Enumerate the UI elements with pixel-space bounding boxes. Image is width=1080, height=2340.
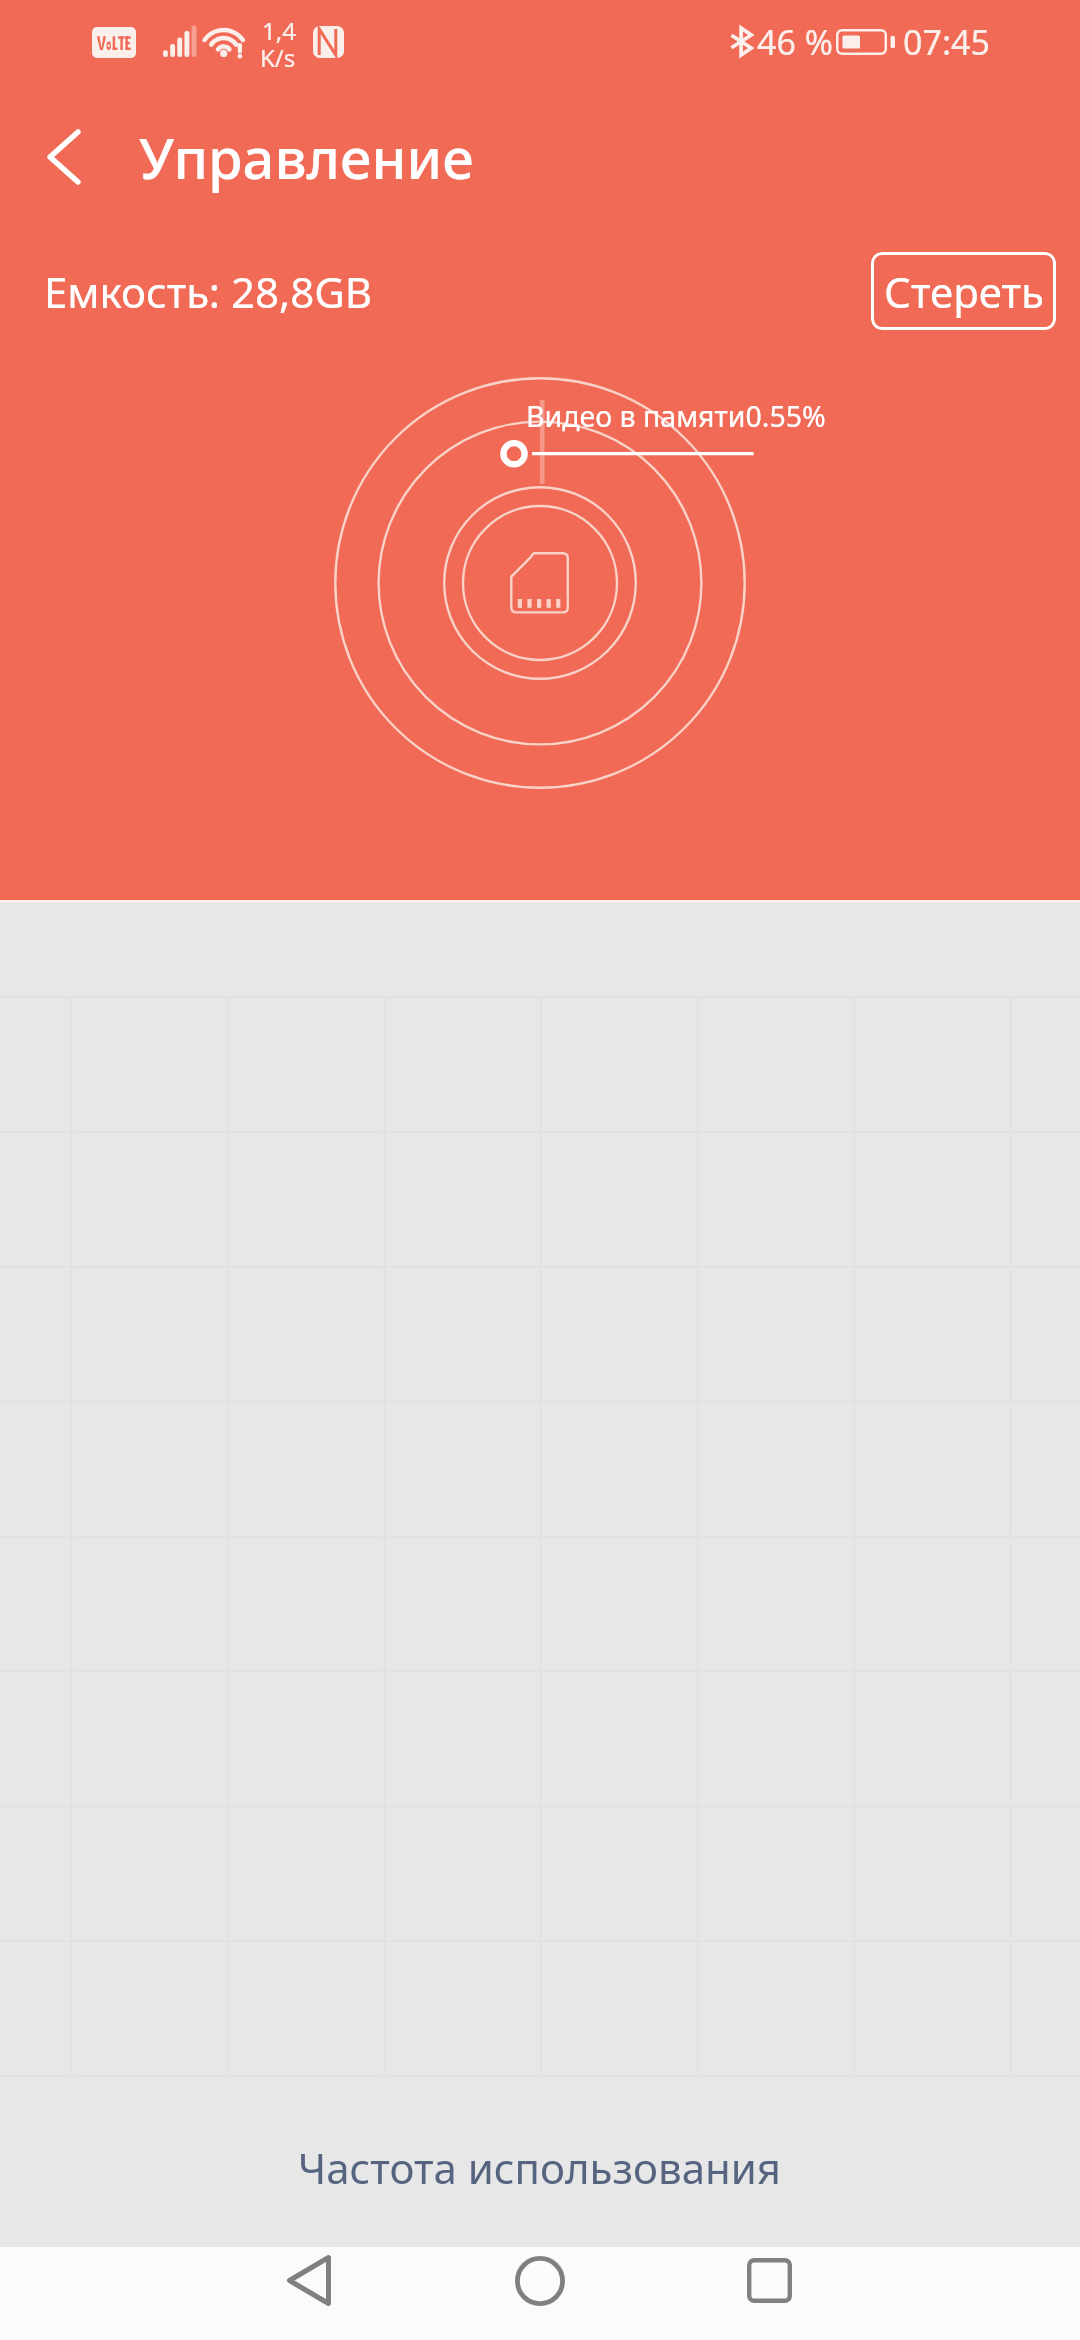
staticText: 46 % xyxy=(757,19,833,65)
staticText: K/s xyxy=(260,41,296,74)
staticText: 07:45 xyxy=(903,19,990,65)
staticText: Стереть xyxy=(884,263,1044,320)
staticText: Видео в памяти0.55% xyxy=(526,397,826,436)
button[interactable]: Главный экран xyxy=(485,2247,595,2340)
staticText: 1,4 xyxy=(262,14,296,47)
button[interactable]: Последние приложения xyxy=(714,2247,824,2340)
button[interactable]: Стереть xyxy=(871,252,1056,330)
staticText: Управление xyxy=(139,119,474,195)
button[interactable]: Назад xyxy=(24,117,104,197)
staticText: Частота использования xyxy=(298,2139,782,2196)
button[interactable]: Назад xyxy=(254,2247,364,2340)
staticText: Емкость: 28,8GB xyxy=(44,263,373,320)
